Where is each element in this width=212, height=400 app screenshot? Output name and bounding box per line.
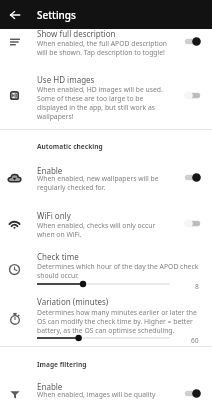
staticText: Show full description (37, 28, 116, 39)
button[interactable]: Switch on (184, 36, 201, 47)
other: Image filter (10, 390, 20, 399)
other: Clock (9, 264, 20, 275)
button[interactable] (0, 204, 212, 243)
button[interactable] (0, 68, 212, 124)
staticText: Automatic checking (37, 142, 103, 151)
button[interactable] (0, 246, 212, 291)
staticText: Image filtering (37, 360, 87, 369)
other: HD images (10, 91, 19, 100)
button[interactable]: Switch on (184, 172, 201, 183)
button[interactable]: Switch on (184, 388, 201, 399)
other: Automatic check (8, 174, 21, 182)
staticText: When enabled, checks will only occur whe… (37, 221, 156, 239)
staticText: Enable (37, 165, 63, 176)
other: Timer (10, 313, 20, 324)
button[interactable] (0, 292, 212, 344)
button[interactable]: Variation slider (33, 333, 174, 343)
staticText: When enabled, images will be quality che… (37, 390, 156, 400)
button[interactable] (0, 375, 212, 400)
staticText: Variation (minutes) (37, 296, 109, 307)
staticText: Determines which hour of the day the APO… (37, 262, 199, 280)
staticText: When enabled, the full APOD description … (37, 39, 168, 57)
other: WiFi (9, 219, 20, 228)
other: Description (10, 38, 20, 46)
staticText: 8 (195, 282, 199, 291)
button[interactable]: Switch off (184, 90, 201, 101)
staticText: WiFi only (37, 210, 71, 221)
staticText: Settings (37, 8, 76, 22)
staticText: When enabled, new wallpapers will be reg… (37, 174, 159, 192)
staticText: Use HD images (37, 74, 95, 85)
button[interactable]: Back (0, 0, 29, 29)
staticText: Check time (37, 251, 79, 262)
button[interactable]: Switch off (184, 218, 201, 229)
staticText: Enable (37, 381, 63, 392)
staticText: Determines how many minutes earlier or l… (37, 308, 197, 335)
staticText: 60 (191, 336, 199, 345)
button[interactable] (0, 29, 212, 60)
button[interactable]: Check time slider (33, 279, 174, 289)
button[interactable] (0, 158, 212, 197)
staticText: When enabled, HD images will be used. So… (37, 85, 163, 121)
